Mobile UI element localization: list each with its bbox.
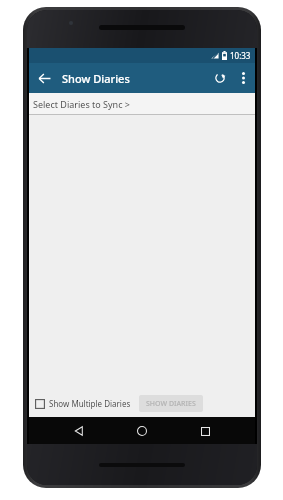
staticText: Show Diaries [62,71,130,86]
button[interactable]: Refresh [208,66,232,90]
button[interactable]: Home [129,418,155,444]
staticText: SHOW DIARIES [146,399,196,409]
staticText: Show Multiple Diaries [49,398,131,409]
staticText: 10:33 [230,50,251,61]
button[interactable]: Back [66,418,92,444]
button[interactable]: Show Multiple Diaries [35,395,131,412]
button[interactable]: More options [232,67,254,89]
button[interactable]: Navigate up [32,66,56,90]
button[interactable]: Select Diaries to Sync > [29,93,255,114]
button[interactable]: SHOW DIARIES [139,395,203,412]
button[interactable]: Recent apps [192,418,218,444]
staticText: Select Diaries to Sync > [33,98,130,110]
